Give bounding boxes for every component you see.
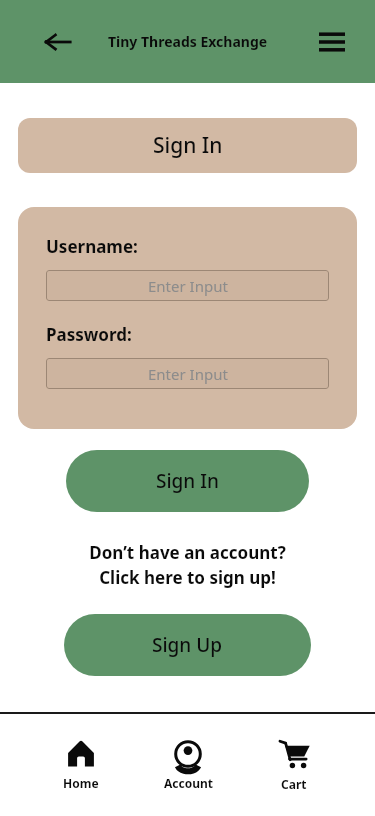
- button[interactable]: Sign Up: [64, 614, 311, 676]
- button[interactable]: Account: [142, 733, 234, 797]
- staticText: Tiny Threads Exchange: [108, 32, 268, 51]
- button[interactable]: Cart: [248, 732, 340, 798]
- staticText: Sign Up: [152, 632, 223, 658]
- staticText: Account: [164, 775, 213, 791]
- button[interactable]: Sign In: [18, 118, 357, 173]
- button[interactable]: Enter Input: [46, 270, 329, 301]
- button[interactable]: Don’t have an account?: [0, 541, 375, 589]
- staticText: Home: [63, 775, 99, 791]
- button[interactable]: Home: [35, 733, 127, 797]
- button[interactable]: Back: [40, 24, 76, 60]
- staticText: Username:: [46, 235, 138, 258]
- staticText: Sign In: [156, 468, 219, 494]
- button[interactable]: Enter Input: [46, 358, 329, 389]
- button[interactable]: Menu: [313, 23, 351, 61]
- button[interactable]: Sign In: [66, 450, 309, 512]
- staticText: Sign In: [153, 131, 223, 160]
- staticText: Enter Input: [148, 276, 228, 296]
- staticText: Click here to sign up!: [99, 566, 276, 589]
- staticText: Don’t have an account?: [89, 541, 286, 564]
- staticText: Cart: [281, 776, 307, 792]
- staticText: Enter Input: [148, 364, 228, 384]
- staticText: Password:: [46, 323, 132, 346]
